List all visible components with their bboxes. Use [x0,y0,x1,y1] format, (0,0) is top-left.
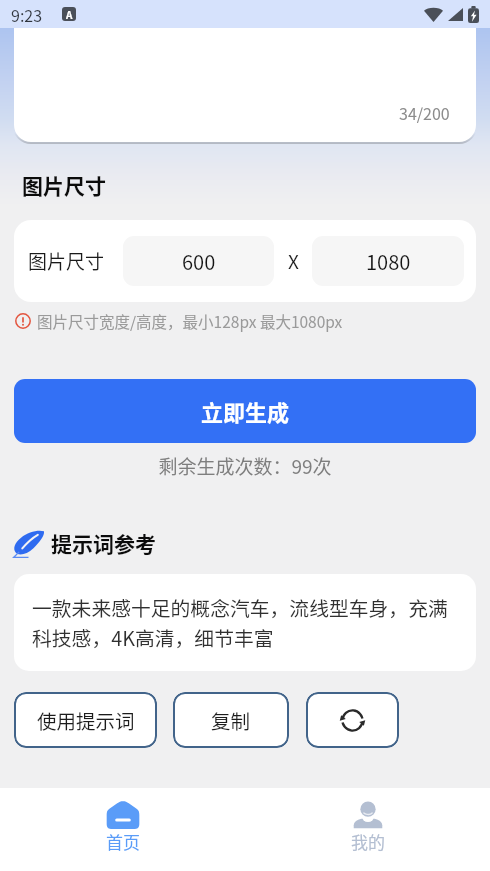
staticText: A [66,7,73,21]
button[interactable]: 首页 [0,788,245,871]
button[interactable]: 使用提示词 [14,692,157,748]
button[interactable]: 立即生成 [14,379,476,443]
staticText: 我的 [351,829,385,854]
staticText: 剩余生成次数：99次 [0,452,490,480]
staticText: 使用提示词 [37,706,135,734]
staticText: 图片尺寸 [28,247,105,275]
button[interactable]: 换一批 [306,692,399,748]
staticText: 提示词参考 [51,528,156,558]
staticText: 立即生成 [201,395,290,427]
button[interactable]: 1080 [312,236,464,286]
staticText: 34/200 [399,101,450,124]
staticText: 复制 [211,706,251,734]
staticText: 600 [182,247,216,276]
button[interactable]: 600 [123,236,274,286]
staticText: X [288,247,299,275]
staticText: 首页 [106,829,140,854]
button[interactable]: 我的 [245,788,490,871]
button[interactable]: 复制 [173,692,289,748]
staticText: 9:23 [11,3,43,26]
staticText: 一款未来感十足的概念汽车，流线型车身，充满科技感，4K高清，细节丰富 [32,593,458,652]
staticText: 图片尺寸宽度/高度，最小128px 最大1080px [37,310,343,332]
staticText: 图片尺寸 [22,170,106,200]
staticText: 1080 [366,247,411,276]
